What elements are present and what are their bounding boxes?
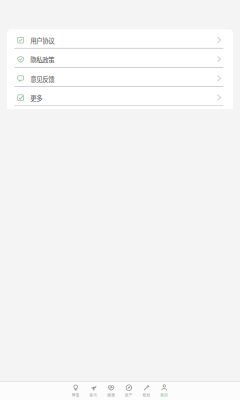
staticText: 资产: [125, 392, 133, 397]
staticText: 健康: [107, 392, 115, 397]
button[interactable]: 更多: [7, 87, 233, 105]
staticText: 我的: [160, 392, 168, 397]
staticText: 隐私政策: [30, 55, 54, 64]
staticText: 意见反馈: [30, 74, 54, 84]
staticText: 规划: [143, 392, 151, 397]
button[interactable]: 用户协议: [7, 29, 233, 48]
staticText: 神策: [72, 392, 80, 397]
staticText: 更多: [30, 93, 42, 103]
button[interactable]: 神策: [67, 382, 85, 400]
button[interactable]: 意见反馈: [7, 68, 233, 86]
button[interactable]: 医元: [85, 382, 102, 400]
button[interactable]: 我的: [155, 382, 173, 400]
staticText: 用户协议: [30, 36, 54, 45]
button[interactable]: 资产: [120, 382, 138, 400]
button[interactable]: 规划: [138, 382, 155, 400]
button[interactable]: 隐私政策: [7, 49, 233, 67]
button[interactable]: 健康: [102, 382, 120, 400]
staticText: 医元: [89, 392, 97, 397]
